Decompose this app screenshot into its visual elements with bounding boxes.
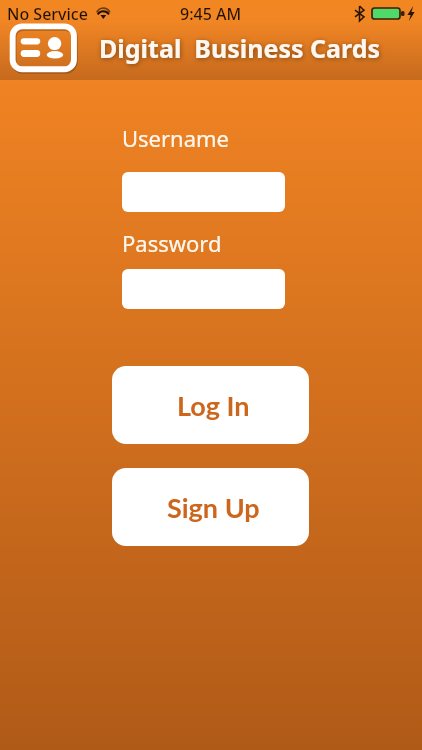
staticText: 9:45 AM [180, 3, 242, 25]
staticText: Sign Up [167, 491, 260, 523]
staticText: Username [122, 123, 230, 153]
button[interactable]: Username input [122, 172, 285, 212]
staticText: Log In [177, 389, 250, 421]
staticText: No Service [7, 3, 88, 25]
button[interactable]: Password input [122, 269, 285, 309]
staticText: Digital Business Cards [99, 31, 381, 65]
button[interactable]: Business cards [9, 23, 77, 73]
staticText: Password [122, 228, 222, 258]
button[interactable]: Log In [112, 366, 309, 444]
button[interactable]: Sign Up [112, 468, 309, 546]
